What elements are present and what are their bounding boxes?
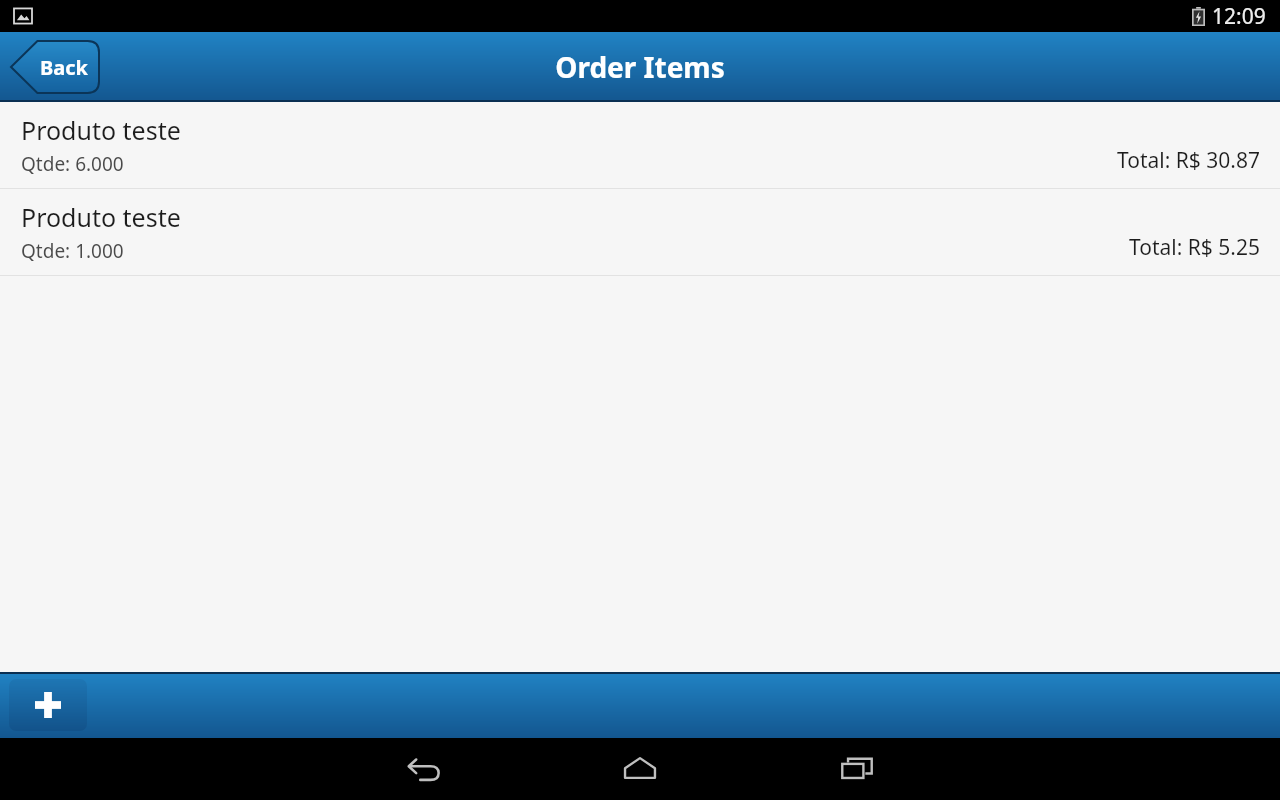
staticText: Produto teste	[21, 200, 181, 234]
button[interactable]: Home	[609, 738, 671, 800]
button[interactable]: Produto teste	[0, 189, 1280, 275]
staticText: 12:09	[1212, 2, 1266, 31]
button[interactable]: Recent apps	[826, 738, 888, 800]
button[interactable]: Back	[392, 738, 454, 800]
staticText: Order Items	[0, 48, 1280, 86]
staticText: Qtde: 1.000	[21, 238, 124, 264]
staticText: Total: R$ 5.25	[1129, 233, 1260, 262]
staticText: Produto teste	[21, 113, 181, 147]
staticText: Qtde: 6.000	[21, 151, 124, 177]
staticText: Total: R$ 30.87	[1117, 146, 1260, 175]
button[interactable]: Back	[11, 41, 99, 93]
staticText: Back	[40, 54, 88, 81]
button[interactable]: Produto teste	[0, 102, 1280, 188]
button[interactable]: Add item	[9, 679, 87, 731]
